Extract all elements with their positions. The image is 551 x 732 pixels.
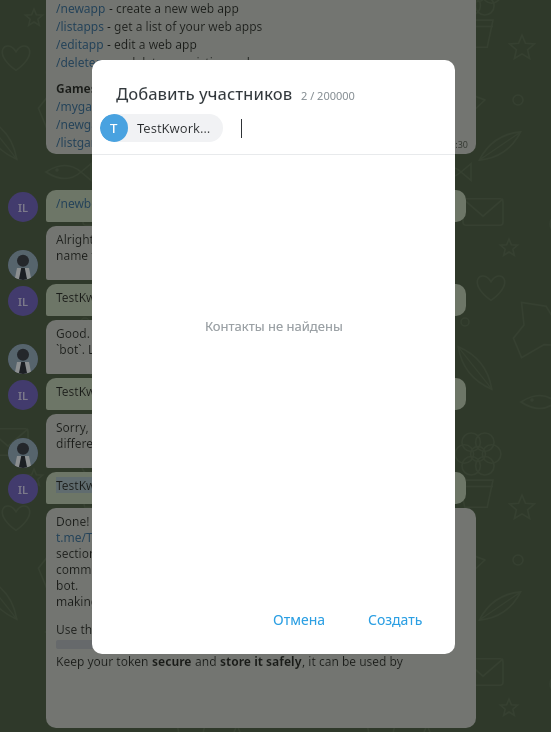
staticText: /listgames [56, 134, 115, 150]
staticText: store it safely [220, 653, 302, 669]
staticText: - create a new web app [106, 0, 239, 16]
staticText: /editgame [56, 152, 115, 154]
staticText: TestKworkManagerBot [56, 477, 185, 493]
staticText: , it can be used by [302, 653, 403, 669]
staticText: t.me/TestKworkManagerBot [56, 529, 215, 545]
staticText: /newbot [56, 195, 103, 211]
staticText: 2 / 200000 [301, 88, 355, 103]
button[interactable]: /newbot [46, 190, 466, 222]
button[interactable]: Avatar [8, 438, 38, 468]
staticText: - edit a web app [104, 36, 197, 52]
button[interactable]: Alright, a new bot. How are we going to … [46, 226, 446, 280]
staticText: making your bot public, please remember … [56, 593, 402, 609]
button[interactable]: Создать [358, 603, 433, 636]
staticText: T [110, 119, 118, 137]
button[interactable]: Avatar IL [8, 286, 38, 316]
staticText: /newapp [56, 0, 106, 16]
staticText: bot. [56, 577, 79, 593]
button[interactable]: Avatar IL [8, 192, 38, 222]
staticText [79, 577, 254, 593]
staticText: Добавить участников [116, 82, 293, 104]
button[interactable]: /newapp [46, 0, 476, 154]
staticText: TestKworkBot [56, 383, 134, 399]
button[interactable]: TestKworkManagerBot [46, 472, 466, 504]
staticText: Alright, a new bot. How are we going to … [56, 231, 409, 247]
button[interactable]: Avatar IL [8, 380, 38, 410]
staticText: Done! Congratulations on your new bot. Y… [56, 513, 378, 529]
staticText: /newgame [56, 116, 116, 132]
staticText: /mygames [56, 98, 116, 114]
staticText: Good. Now let's choose a username for yo… [56, 325, 413, 341]
staticText: different. [56, 435, 108, 451]
staticText: /listapps [56, 18, 104, 34]
button[interactable]: Sorry, this username is already taken. P… [46, 414, 446, 468]
button[interactable]: Отмена [263, 603, 336, 636]
staticText: name for your bot. [56, 247, 162, 263]
staticText: Контакты не найдены [205, 317, 343, 335]
staticText: /editapp [56, 36, 104, 52]
staticText: Отмена [273, 610, 326, 629]
staticText: Games: [56, 80, 101, 96]
staticText: section — whatever you want. By the way,… [56, 545, 414, 561]
button[interactable]: Done! Congratulations on your new bot. Y… [46, 508, 476, 728]
button[interactable]: Avatar [8, 250, 38, 280]
staticText: - get a list of your web apps [104, 18, 263, 34]
staticText: and [192, 653, 220, 669]
staticText: secure [152, 653, 192, 669]
staticText: 10:30 [445, 138, 469, 150]
staticText: TestKwork… [137, 119, 211, 137]
button[interactable]: Good. Now let's choose a username for yo… [46, 320, 446, 374]
staticText: TestKworkBot [56, 289, 134, 305]
staticText: commands, so people know what your bot c… [56, 561, 340, 577]
staticText: Keep your token [56, 653, 152, 669]
staticText: Создать [368, 610, 423, 629]
staticText: - delete an existing web app [118, 54, 279, 70]
button[interactable]: TestKworkBot [46, 378, 466, 410]
staticText: `bot`. Like this, for example: TetrisBot… [56, 341, 340, 357]
staticText: Use this token to access the HTTP API: [56, 621, 271, 637]
staticText: IL [18, 482, 28, 497]
staticText: IL [18, 388, 28, 403]
button[interactable]: Avatar IL [8, 474, 38, 504]
button[interactable]: TestKworkBot [46, 284, 466, 316]
button[interactable]: T [100, 114, 223, 142]
staticText: IL [18, 294, 28, 309]
button[interactable]: Avatar [8, 344, 38, 374]
staticText: IL [18, 200, 28, 215]
staticText: Sorry, this username is already taken. P… [56, 419, 389, 435]
staticText: /deleteapp [56, 54, 118, 70]
